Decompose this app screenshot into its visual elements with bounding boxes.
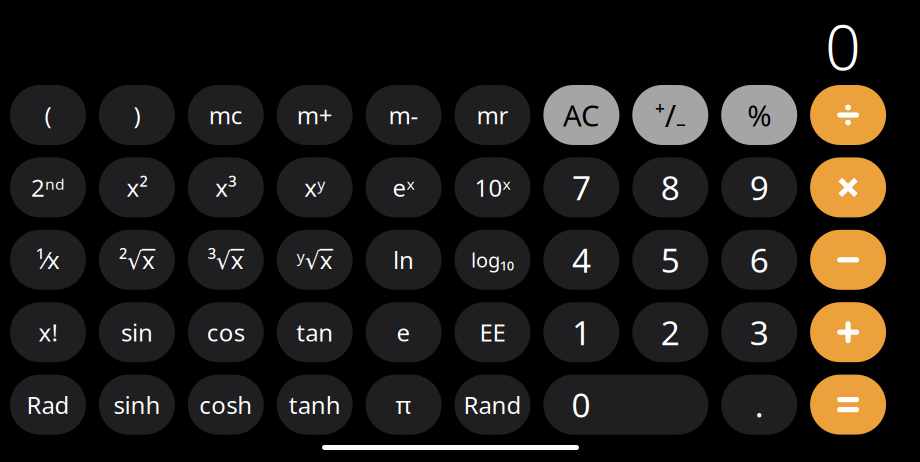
staticText: ln: [393, 244, 414, 276]
button[interactable]: ³√x: [188, 230, 264, 290]
staticText: x³: [215, 171, 236, 203]
button[interactable]: ²√x: [99, 230, 175, 290]
button[interactable]: Divide: [810, 85, 886, 145]
staticText: cos: [207, 316, 245, 348]
button[interactable]: Minus: [810, 230, 886, 290]
staticText: ²√x: [119, 244, 155, 276]
button[interactable]: 10ˣ: [454, 157, 530, 217]
button[interactable]: xʸ: [277, 157, 353, 217]
button[interactable]: cosh: [188, 375, 264, 435]
staticText: 3: [750, 310, 769, 354]
staticText: %: [747, 95, 771, 134]
staticText: tan: [296, 316, 333, 348]
button[interactable]: Equals: [810, 375, 886, 435]
button[interactable]: AC: [543, 85, 619, 145]
button[interactable]: 0: [0, 15, 861, 77]
button[interactable]: mr: [454, 85, 530, 145]
button[interactable]: eˣ: [366, 157, 442, 217]
staticText: 9: [750, 165, 769, 210]
staticText: ¹⁄x: [36, 244, 60, 276]
staticText: 1: [572, 310, 591, 354]
staticText: cosh: [199, 389, 252, 421]
button[interactable]: ʸ√x: [277, 230, 353, 290]
button[interactable]: m+: [277, 85, 353, 145]
button[interactable]: 4: [543, 230, 619, 290]
button[interactable]: 6: [721, 230, 797, 290]
button[interactable]: Multiply: [810, 157, 886, 217]
button[interactable]: EE: [454, 302, 530, 362]
staticText: sinh: [113, 389, 160, 421]
button[interactable]: x³: [188, 157, 264, 217]
button[interactable]: ¹⁄x: [10, 230, 86, 290]
button[interactable]: π: [366, 375, 442, 435]
staticText: mr: [476, 99, 508, 131]
button[interactable]: 8: [632, 157, 708, 217]
staticText: EE: [479, 316, 505, 348]
staticText: 2: [661, 310, 680, 354]
button[interactable]: Plus: [810, 302, 886, 362]
staticText: (: [44, 99, 51, 131]
staticText: tanh: [289, 389, 341, 421]
button[interactable]: 2ⁿᵈ: [10, 157, 86, 217]
staticText: 4: [572, 238, 591, 282]
button[interactable]: ): [99, 85, 175, 145]
button[interactable]: .: [721, 375, 797, 435]
button[interactable]: 9: [721, 157, 797, 217]
button[interactable]: m-: [366, 85, 442, 145]
staticText: ʸ√x: [297, 244, 333, 276]
staticText: 6: [750, 238, 769, 282]
button[interactable]: sinh: [99, 375, 175, 435]
staticText: 7: [572, 165, 591, 210]
button[interactable]: e: [366, 302, 442, 362]
button[interactable]: ln: [366, 230, 442, 290]
button[interactable]: log₁₀: [454, 230, 530, 290]
staticText: m+: [297, 99, 333, 131]
staticText: Rad: [26, 389, 69, 421]
staticText: ³√x: [208, 244, 244, 276]
staticText: AC: [563, 95, 600, 134]
button[interactable]: sin: [99, 302, 175, 362]
button[interactable]: 2: [632, 302, 708, 362]
staticText: 0: [825, 4, 861, 88]
staticText: ): [133, 99, 140, 131]
staticText: sin: [121, 316, 153, 348]
button[interactable]: x²: [99, 157, 175, 217]
staticText: x!: [38, 316, 57, 348]
button[interactable]: tan: [277, 302, 353, 362]
button[interactable]: mc: [188, 85, 264, 145]
staticText: log₁₀: [471, 246, 514, 273]
staticText: xʸ: [304, 171, 325, 203]
staticText: x²: [126, 171, 147, 203]
staticText: π: [396, 389, 412, 421]
staticText: m-: [389, 99, 419, 131]
staticText: Rand: [463, 389, 521, 421]
staticText: 10ˣ: [474, 171, 510, 203]
button[interactable]: Rand: [454, 375, 530, 435]
staticText: ⁺/₋: [655, 95, 686, 135]
button[interactable]: 7: [543, 157, 619, 217]
button[interactable]: 5: [632, 230, 708, 290]
button[interactable]: ⁺/₋: [632, 85, 708, 145]
button[interactable]: 1: [543, 302, 619, 362]
staticText: 5: [661, 238, 680, 282]
staticText: eˣ: [393, 171, 415, 203]
button[interactable]: %: [721, 85, 797, 145]
button[interactable]: (: [10, 85, 86, 145]
staticText: 8: [661, 165, 680, 210]
button[interactable]: Rad: [10, 375, 86, 435]
staticText: e: [397, 316, 411, 348]
staticText: 2ⁿᵈ: [31, 171, 65, 203]
staticText: mc: [209, 99, 243, 131]
button[interactable]: tanh: [277, 375, 353, 435]
staticText: .: [755, 382, 764, 427]
button[interactable]: x!: [10, 302, 86, 362]
button[interactable]: 0: [543, 375, 708, 435]
button[interactable]: 3: [721, 302, 797, 362]
staticText: 0: [571, 382, 590, 427]
button[interactable]: cos: [188, 302, 264, 362]
